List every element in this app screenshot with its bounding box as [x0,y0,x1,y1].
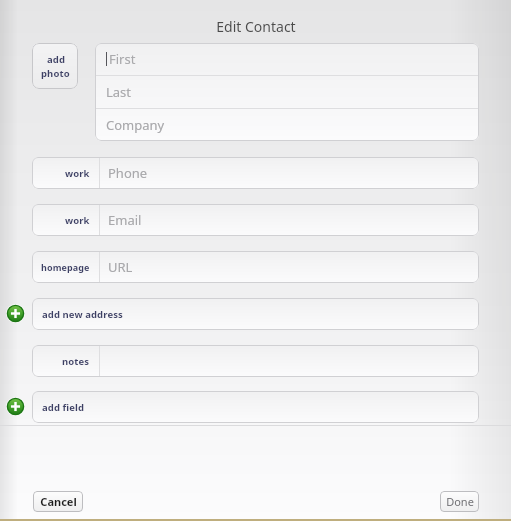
staticText: work [65,214,90,227]
staticText: notes [62,355,90,368]
staticText: homepage [41,261,90,273]
button[interactable]: add new address [32,298,479,330]
staticText: Last [106,83,132,101]
button[interactable]: add field [32,391,479,423]
button[interactable]: work [32,204,479,236]
staticText: Company [106,116,165,134]
staticText: add field [42,401,85,414]
staticText: URL [108,258,133,276]
staticText: First [109,50,136,68]
button[interactable]: work [32,157,479,189]
staticText: Cancel [40,494,77,509]
staticText: add new address [42,308,123,321]
button[interactable]: First [95,43,479,75]
button[interactable]: Cancel [33,491,83,512]
button[interactable]: Company [95,109,479,141]
staticText: Edit Contact [216,17,296,36]
button[interactable]: add [32,43,78,89]
staticText: Phone [108,164,148,182]
staticText: Done [446,494,474,509]
staticText: Email [108,211,142,229]
staticText: add [47,53,65,66]
button[interactable]: homepage [32,251,479,283]
button[interactable]: Add [6,304,25,323]
button[interactable]: Add [6,397,25,416]
staticText: work [65,167,90,180]
button[interactable]: notes [32,345,479,377]
button[interactable]: Done [440,491,479,512]
button[interactable]: Last [95,76,479,108]
staticText: photo [41,67,70,80]
